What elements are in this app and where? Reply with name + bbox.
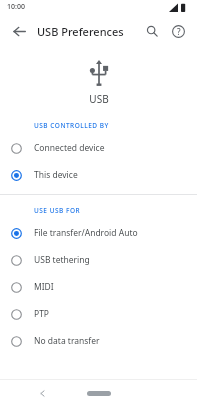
button[interactable]: No data transfer — [0, 327, 197, 354]
staticText: Connected device — [34, 142, 105, 154]
staticText: USE USB FOR — [34, 206, 81, 215]
button[interactable]: PTP — [0, 300, 197, 327]
staticText: This device — [34, 169, 78, 181]
staticText: 10:00 — [7, 2, 25, 12]
button[interactable]: MIDI — [0, 273, 197, 300]
button[interactable]: Search — [139, 18, 165, 44]
staticText: No data transfer — [34, 335, 100, 347]
staticText: MIDI — [34, 281, 54, 293]
button[interactable]: Connected device — [0, 134, 197, 161]
staticText: PTP — [34, 308, 50, 320]
staticText: USB CONTROLLED BY — [34, 121, 109, 130]
staticText: USB — [89, 92, 109, 106]
button[interactable]: File transfer/Android Auto — [0, 219, 197, 246]
button[interactable]: Back — [33, 384, 51, 402]
button[interactable]: Home — [87, 391, 111, 396]
staticText: ? — [177, 26, 181, 37]
button[interactable]: Back — [6, 18, 32, 44]
staticText: USB Preferences — [37, 24, 124, 39]
staticText: File transfer/Android Auto — [34, 227, 138, 239]
button[interactable]: USB tethering — [0, 246, 197, 273]
button[interactable]: This device — [0, 161, 197, 188]
staticText: USB tethering — [34, 254, 90, 266]
button[interactable]: Help — [165, 18, 191, 44]
